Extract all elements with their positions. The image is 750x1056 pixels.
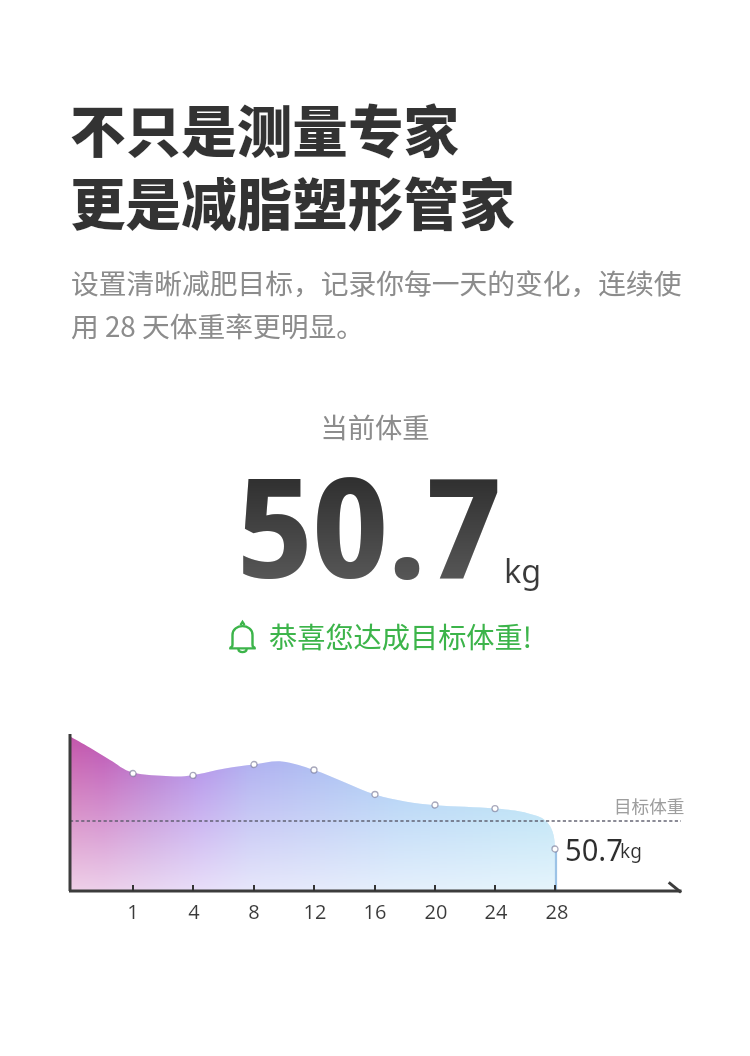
staticText: 8: [234, 898, 274, 925]
staticText: 不只是测量专家: [70, 88, 460, 169]
staticText: 12: [295, 898, 335, 925]
staticText: kg: [620, 838, 642, 864]
button[interactable]: Goal reached: [229, 615, 532, 656]
staticText: 24: [476, 898, 516, 925]
staticText: 16: [355, 898, 395, 925]
staticText: 目标体重: [614, 793, 685, 818]
staticText: 28: [537, 898, 577, 925]
staticText: 恭喜您达成目标体重!: [269, 615, 532, 656]
staticText: 20: [416, 898, 456, 925]
staticText: 更是减脂塑形管家: [70, 161, 515, 242]
staticText: 1: [113, 898, 153, 925]
staticText: 当前体重: [0, 406, 750, 446]
other: Goal reached: [229, 619, 256, 653]
staticText: 50.7: [565, 828, 623, 870]
staticText: kg: [504, 548, 542, 592]
staticText: 4: [174, 898, 214, 925]
staticText: 设置清晰减肥目标，记录你每一天的变化，连续使用 28 天体重率更明显。: [71, 262, 685, 345]
staticText: 50.7: [237, 429, 502, 618]
